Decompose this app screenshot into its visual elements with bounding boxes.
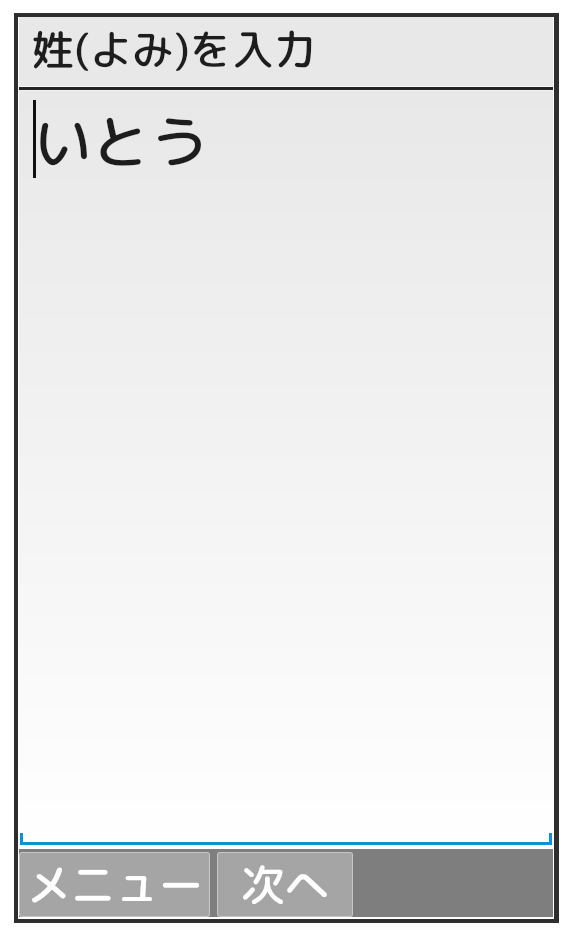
- staticText: 次へ: [241, 854, 329, 915]
- button[interactable]: いとう: [19, 91, 553, 849]
- button[interactable]: 次へ: [218, 853, 352, 916]
- staticText: 姓(よみ)を入力: [32, 20, 316, 79]
- button[interactable]: 姓(よみ)を入力: [19, 17, 553, 86]
- button[interactable]: メニュー: [20, 853, 209, 916]
- staticText: メニュー: [27, 854, 203, 915]
- staticText: いとう: [34, 101, 209, 182]
